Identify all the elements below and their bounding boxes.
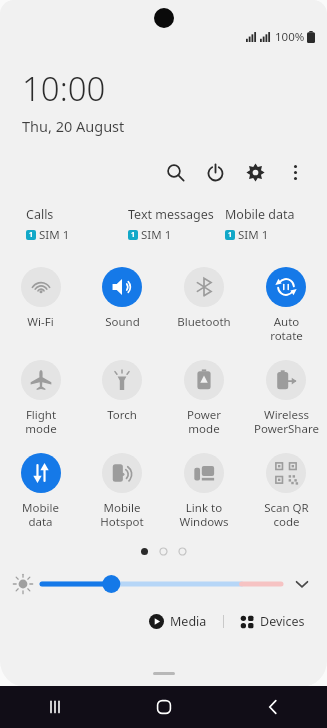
button[interactable]: Settings <box>235 152 275 192</box>
staticText: 100% <box>275 29 305 45</box>
staticText: Mobile Hotspot <box>100 500 144 530</box>
button[interactable]: Wi-Fi <box>0 265 81 332</box>
staticText: Flight mode <box>25 407 57 437</box>
staticText: SIM 1 <box>141 227 172 243</box>
staticText: Sound <box>105 314 140 330</box>
button[interactable]: More options <box>275 152 315 192</box>
button[interactable]: Scan QR code <box>245 451 327 532</box>
staticText: 1 <box>131 230 136 240</box>
staticText: Torch <box>107 407 137 423</box>
button[interactable]: Text messages <box>128 206 225 243</box>
staticText: 1 <box>29 230 34 240</box>
button[interactable]: Recents <box>0 686 109 728</box>
staticText: Media <box>170 613 207 630</box>
staticText: Wireless PowerShare <box>254 407 319 437</box>
button[interactable]: Expand brightness <box>289 571 315 597</box>
button[interactable]: Media <box>143 609 213 634</box>
button[interactable]: Wireless PowerShare <box>245 358 327 439</box>
staticText: Link to Windows <box>179 500 229 530</box>
button[interactable]: Mobile Hotspot <box>81 451 163 532</box>
button[interactable]: Power mode <box>163 358 245 439</box>
button[interactable]: Auto rotate <box>245 265 327 346</box>
staticText: SIM 1 <box>39 227 70 243</box>
staticText: Scan QR code <box>264 500 309 530</box>
button[interactable]: Sound <box>81 265 163 332</box>
staticText: SIM 1 <box>238 227 269 243</box>
staticText: Calls <box>26 206 54 223</box>
button[interactable]: Link to Windows <box>163 451 245 532</box>
staticText: Devices <box>260 613 305 630</box>
staticText: Mobile data <box>225 206 295 223</box>
button[interactable]: Home <box>109 686 218 728</box>
button[interactable]: Devices <box>234 609 311 634</box>
button[interactable]: Mobile data <box>0 451 81 532</box>
staticText: Wi-Fi <box>27 314 54 330</box>
staticText: Bluetooth <box>177 314 231 330</box>
staticText: Power mode <box>187 407 221 437</box>
button[interactable] <box>42 569 281 599</box>
staticText: Thu, 20 August <box>22 116 125 136</box>
button[interactable]: Search <box>155 152 195 192</box>
button[interactable]: Back <box>218 686 327 728</box>
staticText: Text messages <box>128 206 214 223</box>
staticText: Auto rotate <box>270 314 303 344</box>
staticText: Mobile data <box>22 500 59 530</box>
button[interactable]: Power off <box>195 152 235 192</box>
button[interactable]: Mobile data <box>225 206 327 243</box>
button[interactable]: Flight mode <box>0 358 81 439</box>
staticText: 10:00 <box>22 66 106 111</box>
button[interactable]: Torch <box>81 358 163 425</box>
staticText: 1 <box>228 230 233 240</box>
button[interactable]: Calls <box>26 206 128 243</box>
button[interactable]: Bluetooth <box>163 265 245 332</box>
